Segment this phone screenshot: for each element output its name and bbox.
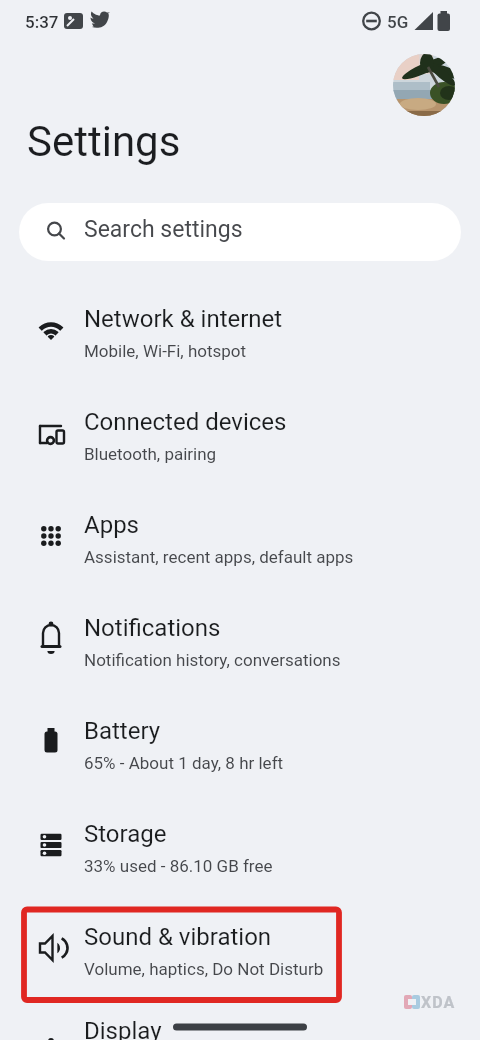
staticText: Connected devices xyxy=(84,408,287,436)
staticText: Settings xyxy=(27,117,181,166)
staticText: Mobile, Wi-Fi, hotspot xyxy=(84,341,247,361)
staticText: 33% used - 86.10 GB free xyxy=(84,856,273,876)
staticText: Notification history, conversations xyxy=(84,650,341,670)
staticText: Sound & vibration xyxy=(84,923,272,951)
staticText: Search settings xyxy=(84,216,243,243)
staticText: Battery xyxy=(84,717,161,745)
staticText: Volume, haptics, Do Not Disturb xyxy=(84,959,324,979)
staticText: Storage xyxy=(84,820,167,848)
staticText: Network & internet xyxy=(84,305,283,333)
staticText: 5G xyxy=(387,12,409,32)
staticText: XDA xyxy=(421,993,456,1012)
staticText: Display xyxy=(84,1017,162,1040)
staticText: 5:37 xyxy=(25,12,59,32)
staticText: Assistant, recent apps, default apps xyxy=(84,547,354,567)
staticText: Apps xyxy=(84,511,139,539)
staticText: Bluetooth, pairing xyxy=(84,444,217,464)
staticText: 65% - About 1 day, 8 hr left xyxy=(84,753,284,773)
staticText: Notifications xyxy=(84,614,221,642)
